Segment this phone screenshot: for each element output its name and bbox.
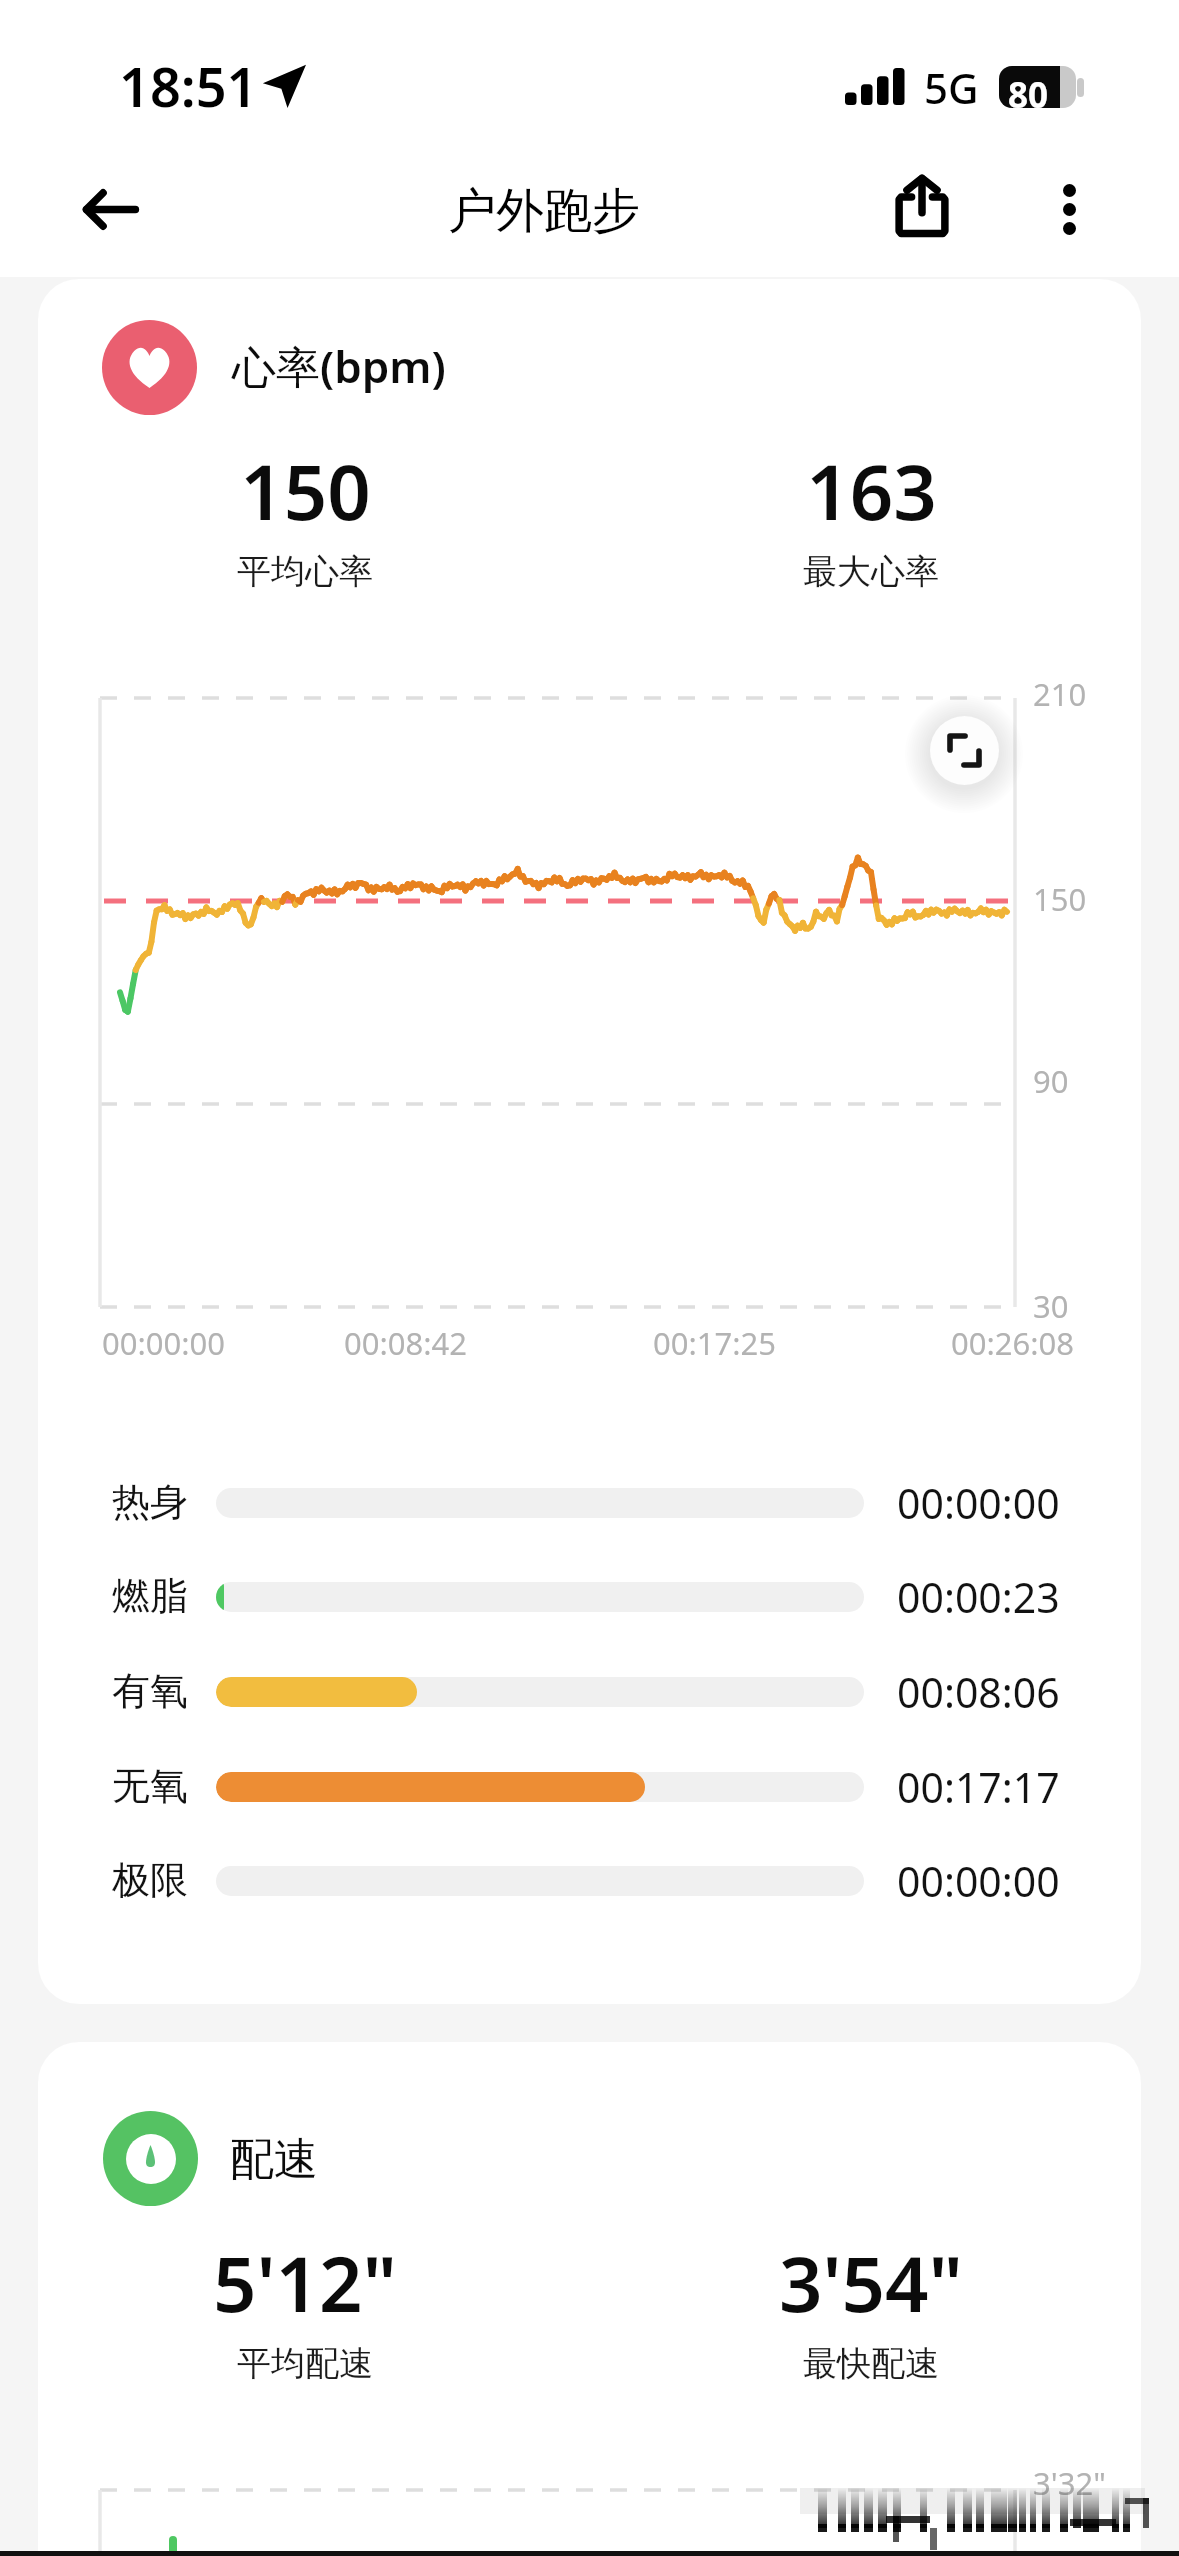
staticText: 户外跑步 bbox=[448, 181, 640, 241]
button[interactable]: 有氧 bbox=[38, 1645, 1141, 1739]
staticText: 00:00:00 bbox=[897, 1475, 1060, 1531]
button[interactable]: 配速 bbox=[38, 2042, 1141, 2556]
staticText: 无氧 bbox=[112, 1762, 188, 1810]
staticText: 5G bbox=[924, 59, 979, 116]
staticText: 有氧 bbox=[112, 1667, 188, 1715]
button[interactable]: Share bbox=[874, 157, 970, 253]
staticText: 90 bbox=[1033, 1060, 1069, 1102]
staticText: 3'54" bbox=[779, 2231, 963, 2335]
button[interactable]: 无氧 bbox=[38, 1740, 1141, 1834]
staticText: 150 bbox=[1033, 878, 1087, 920]
staticText: 30 bbox=[1033, 1285, 1069, 1327]
staticText: 00:17:17 bbox=[897, 1759, 1060, 1815]
button[interactable]: 心率(bpm) bbox=[38, 279, 1141, 2004]
staticText: 210 bbox=[1033, 673, 1087, 715]
button[interactable]: Expand chart bbox=[930, 716, 999, 785]
button[interactable]: More options bbox=[1021, 161, 1117, 257]
staticText: 18:51 bbox=[119, 49, 258, 123]
button[interactable]: 热身 bbox=[38, 1456, 1141, 1550]
staticText: 00:26:08 bbox=[951, 1322, 1075, 1364]
staticText: 热身 bbox=[112, 1478, 188, 1526]
staticText: 平均配速 bbox=[237, 2342, 373, 2385]
staticText: 5'12" bbox=[213, 2231, 397, 2335]
staticText: 配速 bbox=[230, 2132, 318, 2187]
staticText: 3'32" bbox=[1033, 2462, 1106, 2504]
staticText: 00:17:25 bbox=[653, 1322, 777, 1364]
staticText: 燃脂 bbox=[112, 1572, 188, 1620]
staticText: 极限 bbox=[112, 1856, 188, 1904]
staticText: 平均心率 bbox=[237, 550, 373, 593]
button[interactable]: 燃脂 bbox=[38, 1550, 1141, 1644]
staticText: 00:08:42 bbox=[344, 1322, 468, 1364]
staticText: 00:00:00 bbox=[102, 1322, 226, 1364]
staticText: 最快配速 bbox=[803, 2342, 939, 2385]
staticText: 00:00:23 bbox=[897, 1569, 1060, 1625]
staticText: 心率(bpm) bbox=[232, 336, 446, 396]
staticText: 80 bbox=[1008, 71, 1049, 108]
staticText: 163 bbox=[806, 439, 937, 543]
staticText: 00:00:00 bbox=[897, 1853, 1060, 1909]
button[interactable]: 极限 bbox=[38, 1834, 1141, 1928]
button[interactable]: Back bbox=[64, 163, 156, 255]
staticText: 00:08:06 bbox=[897, 1664, 1060, 1720]
staticText: 150 bbox=[240, 439, 371, 543]
staticText: 最大心率 bbox=[803, 550, 939, 593]
